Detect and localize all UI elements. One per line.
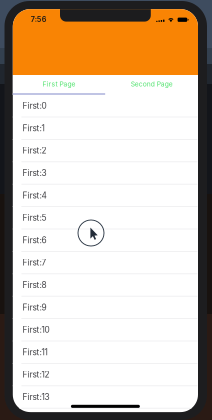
button[interactable]: First:13 (13, 386, 198, 409)
staticText: First Page (43, 80, 76, 88)
button[interactable]: First:12 (13, 364, 198, 386)
staticText: First:1 (23, 123, 45, 133)
staticText: First:10 (23, 325, 50, 335)
staticText: First:9 (23, 302, 47, 312)
button[interactable]: First Page (13, 75, 105, 93)
staticText: First:11 (23, 347, 48, 357)
button[interactable]: First:9 (13, 297, 198, 319)
staticText: First:13 (23, 392, 50, 402)
staticText: First:12 (23, 370, 50, 380)
button[interactable]: First:11 (13, 341, 198, 364)
staticText: First:0 (23, 101, 47, 111)
staticText: First:6 (23, 235, 47, 245)
staticText: First:7 (23, 258, 47, 268)
button[interactable]: First:6 (13, 229, 198, 252)
staticText: Second Page (131, 80, 173, 88)
staticText: 7:56 (31, 15, 47, 24)
staticText: First:3 (23, 168, 47, 178)
staticText: First:2 (23, 146, 47, 156)
button[interactable]: First:4 (13, 185, 198, 207)
button[interactable]: First:8 (13, 274, 198, 297)
button[interactable]: First:7 (13, 252, 198, 274)
button[interactable]: First:5 (13, 207, 198, 229)
button[interactable]: Second Page (105, 75, 198, 93)
button[interactable]: First:0 (13, 95, 198, 117)
staticText: First:5 (23, 213, 47, 223)
staticText: First:4 (23, 190, 47, 200)
button[interactable]: First:1 (13, 117, 198, 140)
staticText: First:8 (23, 280, 47, 290)
button[interactable]: First:10 (13, 319, 198, 341)
button[interactable]: First:3 (13, 162, 198, 185)
button[interactable]: First:2 (13, 140, 198, 162)
